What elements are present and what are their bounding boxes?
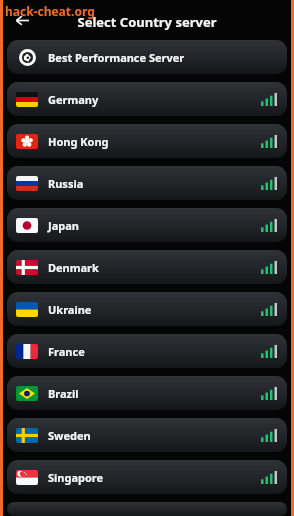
button[interactable]: Japan bbox=[7, 208, 287, 242]
staticText: hack-cheat.org bbox=[5, 3, 95, 19]
staticText: Germany bbox=[48, 92, 99, 107]
button[interactable]: Singapore bbox=[7, 460, 287, 494]
staticText: Russia bbox=[48, 176, 84, 191]
button[interactable]: Best Performance Server bbox=[7, 40, 287, 74]
staticText: Denmark bbox=[48, 260, 99, 275]
staticText: Hong Kong bbox=[48, 134, 109, 149]
button[interactable]: Sweden bbox=[7, 418, 287, 452]
staticText: Japan bbox=[48, 218, 79, 233]
button[interactable]: Hong Kong bbox=[7, 124, 287, 158]
button[interactable]: Back bbox=[10, 8, 34, 32]
staticText: Brazil bbox=[48, 386, 79, 401]
button[interactable]: France bbox=[7, 334, 287, 368]
staticText: Ukraine bbox=[48, 302, 92, 317]
button[interactable]: Russia bbox=[7, 166, 287, 200]
button[interactable]: Ukraine bbox=[7, 292, 287, 326]
staticText: Singapore bbox=[48, 470, 104, 485]
button[interactable] bbox=[7, 502, 287, 516]
staticText: Sweden bbox=[48, 428, 91, 443]
staticText: Best Performance Server bbox=[48, 50, 185, 65]
button[interactable]: Germany bbox=[7, 82, 287, 116]
button[interactable]: Brazil bbox=[7, 376, 287, 410]
staticText: France bbox=[48, 344, 85, 359]
button[interactable]: Denmark bbox=[7, 250, 287, 284]
staticText: Select Country server bbox=[77, 13, 217, 31]
